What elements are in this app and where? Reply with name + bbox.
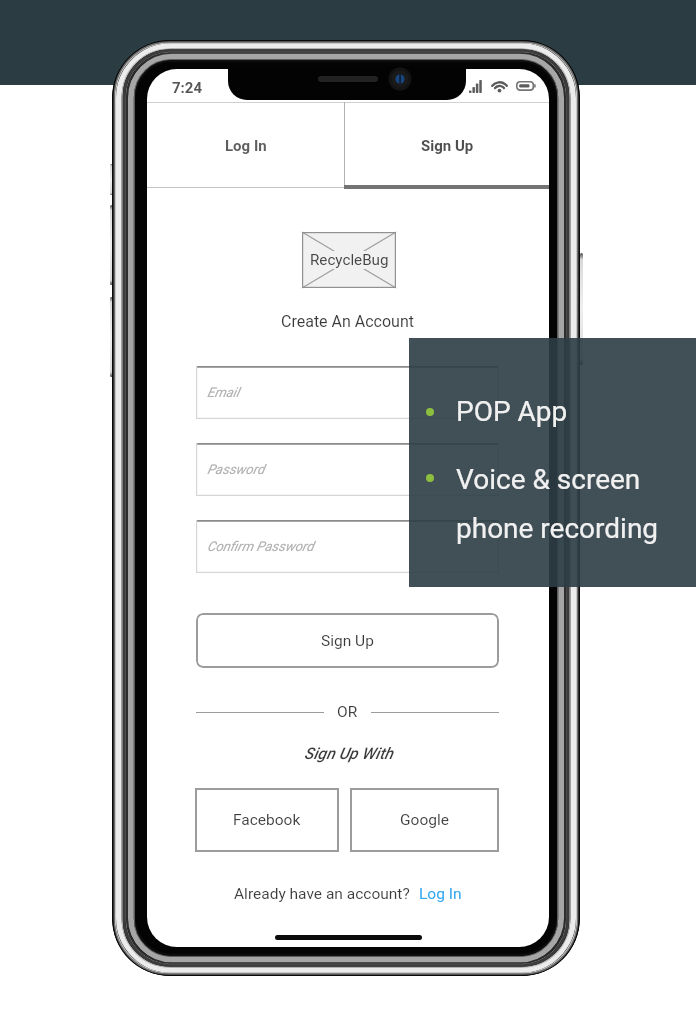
staticText: Sign Up With — [304, 744, 393, 763]
staticText: Log In — [419, 885, 462, 903]
other: Wi-Fi — [490, 79, 509, 92]
staticText: 7:24 — [172, 79, 203, 97]
other: Battery — [516, 80, 535, 92]
button[interactable]: Facebook — [195, 788, 339, 852]
button[interactable]: Confirm Password — [196, 520, 499, 573]
other: Signal strength — [469, 80, 482, 93]
button[interactable]: Sign Up — [345, 102, 549, 189]
staticText: Sign Up — [321, 632, 374, 650]
staticText: Email — [207, 385, 240, 401]
staticText: Create An Account — [281, 312, 415, 331]
staticText: Google — [400, 811, 449, 829]
button[interactable]: Sign Up — [196, 613, 499, 668]
staticText: OR — [337, 703, 358, 721]
staticText: RecycleBug — [310, 251, 389, 269]
staticText: Sign Up — [421, 137, 474, 155]
button[interactable]: Email — [196, 366, 499, 419]
staticText: Facebook — [233, 811, 301, 829]
staticText: Password — [207, 462, 265, 478]
button[interactable]: Log In — [419, 885, 462, 903]
button[interactable]: Google — [350, 788, 499, 852]
staticText: Voice & screen phone recording — [456, 463, 659, 545]
staticText: Log In — [225, 137, 267, 155]
staticText: Already have an account? — [234, 885, 410, 903]
button[interactable]: Log In — [147, 102, 344, 189]
staticText: Confirm Password — [207, 539, 314, 555]
staticText: POP App — [456, 395, 568, 428]
button[interactable]: Password — [196, 443, 499, 496]
